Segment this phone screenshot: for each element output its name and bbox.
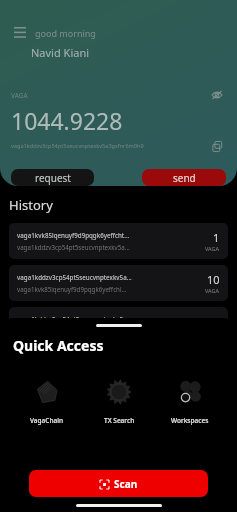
- button[interactable]: Copy address: [208, 137, 226, 155]
- staticText: VAGA: [205, 245, 220, 252]
- button[interactable]: TX Search: [87, 373, 151, 427]
- button[interactable]: send: [142, 169, 226, 186]
- staticText: vaga1kddzv3cp54pt5seucvnptexkv5a3gsfnr6m…: [11, 142, 208, 150]
- staticText: vaga1kddzv3cp54pt5seucvnptexkv5a...: [17, 273, 132, 281]
- button[interactable]: vaga1kddzv3cp54pt5seucvnptexkv5a...: [9, 265, 228, 301]
- staticText: request: [35, 171, 71, 185]
- staticText: 1: [213, 314, 220, 329]
- staticText: 1: [213, 230, 220, 245]
- staticText: good morning: [35, 27, 96, 39]
- staticText: vaga1kddzv3cp54pt5seucvnptexkv5a...: [17, 315, 132, 323]
- staticText: Scan: [114, 477, 138, 491]
- staticText: VAGA: [11, 91, 208, 100]
- button[interactable]: vaga1kvk85lqenuyf9d9pqgk6yeffcht...: [9, 223, 228, 259]
- staticText: send: [173, 171, 196, 185]
- button[interactable]: Menu: [11, 24, 29, 42]
- staticText: Quick Access: [13, 336, 104, 355]
- staticText: VAGA: [205, 287, 220, 294]
- staticText: vaga1kvk85lqenuyf9d9pqgk6yeffchl...: [17, 285, 127, 293]
- staticText: VagaChain: [30, 416, 64, 425]
- staticText: Navid Kiani: [31, 45, 90, 60]
- button[interactable]: VagaChain: [15, 373, 79, 427]
- button[interactable]: Workspaces: [158, 373, 222, 427]
- button[interactable]: Scan: [29, 470, 208, 497]
- staticText: 10: [207, 272, 220, 287]
- button[interactable]: vaga1kddzv3cp54pt5seucvnptexkv5a...: [9, 307, 228, 343]
- staticText: vaga1kddzv3cp54pt5seucvnptexkv5a...: [17, 243, 130, 251]
- staticText: vaga1kvk85lqenuyf9d9pqgk6yeffcht...: [17, 231, 130, 239]
- button[interactable]: request: [11, 169, 94, 186]
- button[interactable]: Hide balance: [208, 86, 226, 104]
- staticText: History: [9, 196, 53, 214]
- staticText: 1044.9228: [11, 105, 123, 136]
- staticText: TX Search: [104, 416, 135, 425]
- staticText: Workspaces: [171, 416, 209, 425]
